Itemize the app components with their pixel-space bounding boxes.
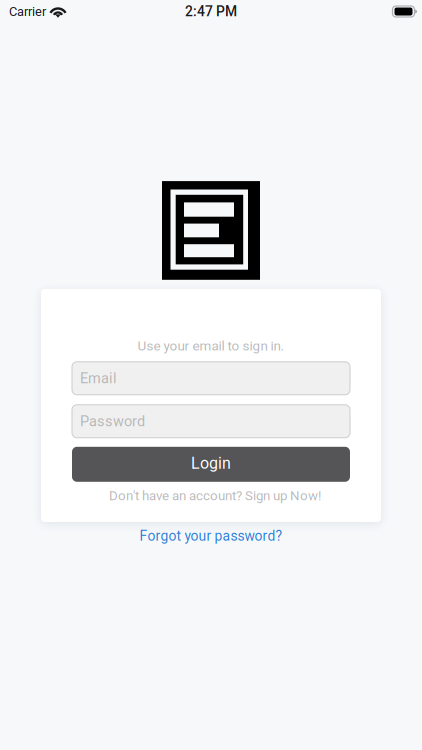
staticText: Password — [80, 413, 145, 430]
button[interactable]: Password — [72, 405, 350, 438]
button[interactable]: Don't have an account? Sign up Now! — [72, 488, 350, 504]
button[interactable]: Login — [72, 447, 350, 482]
staticText: Don't have an account? Sign up Now! — [109, 488, 321, 504]
staticText: Carrier — [9, 4, 46, 19]
staticText: Use your email to sign in. — [137, 338, 284, 354]
staticText: Forgot your password? — [139, 528, 282, 544]
staticText: 2:47 PM — [185, 3, 237, 20]
staticText: Login — [191, 454, 231, 473]
button[interactable]: Forgot your password? — [121, 525, 301, 547]
staticText: Email — [80, 370, 117, 387]
button[interactable]: Email — [72, 362, 350, 395]
